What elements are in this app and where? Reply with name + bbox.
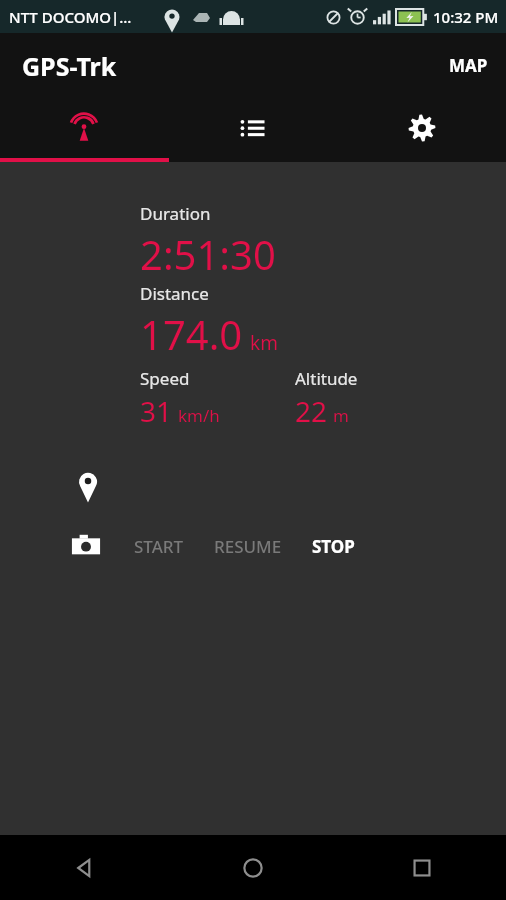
staticText: 22: [295, 392, 328, 430]
button[interactable]: RESUME: [208, 525, 288, 568]
button[interactable]: Settings: [337, 98, 506, 158]
staticText: 174.0: [140, 307, 243, 361]
button[interactable]: MAP: [431, 42, 506, 89]
staticText: START: [134, 535, 184, 558]
staticText: 10:32 PM: [433, 7, 499, 27]
button[interactable]: Recent apps: [337, 835, 506, 900]
staticText: Distance: [140, 282, 209, 305]
staticText: STOP: [312, 535, 355, 558]
staticText: NTT DOCOMO|...: [9, 7, 132, 27]
staticText: km: [250, 330, 278, 356]
button[interactable]: START: [128, 525, 190, 568]
staticText: m: [333, 404, 349, 427]
staticText: MAP: [449, 54, 488, 77]
staticText: km/h: [178, 404, 220, 427]
staticText: Altitude: [295, 367, 358, 390]
button[interactable]: STOP: [306, 525, 361, 568]
button[interactable]: Camera: [62, 522, 110, 570]
staticText: 31: [140, 392, 173, 430]
staticText: Duration: [140, 202, 211, 225]
button[interactable]: Location: [62, 460, 114, 512]
button[interactable]: List: [168, 98, 337, 158]
button[interactable]: Back: [0, 835, 168, 900]
staticText: 2:51:30: [140, 227, 276, 281]
staticText: Speed: [140, 367, 190, 390]
button[interactable]: Home: [168, 835, 337, 900]
button[interactable]: Tracking: [0, 98, 168, 158]
staticText: RESUME: [214, 535, 282, 558]
staticText: GPS-Trk: [22, 49, 117, 83]
